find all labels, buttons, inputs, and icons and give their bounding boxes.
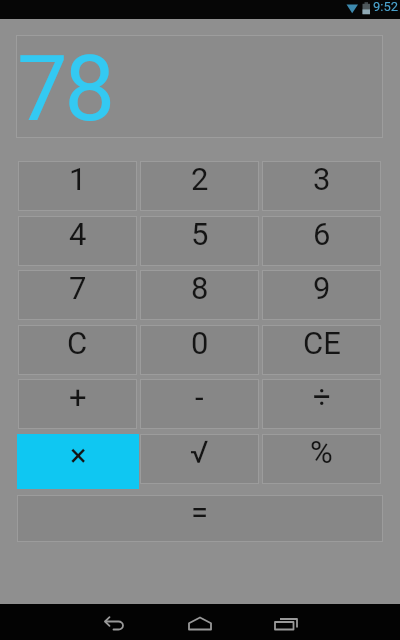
- staticText: 3: [313, 161, 331, 197]
- staticText: 8: [191, 270, 209, 306]
- staticText: 6: [313, 216, 331, 252]
- button[interactable]: [95, 604, 131, 640]
- button[interactable]: =: [17, 495, 383, 542]
- staticText: 0: [191, 325, 209, 361]
- button[interactable]: ×: [17, 434, 139, 489]
- staticText: CE: [303, 325, 341, 361]
- staticText: 7: [69, 270, 87, 306]
- button[interactable]: 3: [262, 161, 381, 211]
- button[interactable]: [182, 604, 218, 640]
- button[interactable]: C: [18, 325, 137, 375]
- staticText: ×: [70, 437, 87, 473]
- button[interactable]: +: [18, 379, 137, 429]
- button[interactable]: %: [262, 434, 381, 484]
- button[interactable]: 9: [262, 270, 381, 320]
- button[interactable]: 7: [18, 270, 137, 320]
- staticText: 5: [191, 216, 209, 252]
- staticText: 78: [17, 37, 113, 140]
- button[interactable]: 78: [16, 35, 383, 138]
- button[interactable]: 4: [18, 216, 137, 266]
- button[interactable]: CE: [262, 325, 381, 375]
- staticText: √: [190, 434, 209, 470]
- button[interactable]: 0: [140, 325, 259, 375]
- button[interactable]: 6: [262, 216, 381, 266]
- button[interactable]: -: [140, 379, 259, 429]
- staticText: 9:52: [373, 0, 399, 14]
- staticText: ÷: [313, 379, 331, 415]
- button[interactable]: √: [140, 434, 259, 484]
- button[interactable]: [267, 604, 303, 640]
- button[interactable]: ÷: [262, 379, 381, 429]
- staticText: +: [69, 379, 87, 415]
- staticText: C: [67, 325, 88, 361]
- staticText: 4: [69, 216, 87, 252]
- button[interactable]: 1: [18, 161, 137, 211]
- staticText: =: [191, 494, 209, 530]
- button[interactable]: 5: [140, 216, 259, 266]
- button[interactable]: 2: [140, 161, 259, 211]
- button[interactable]: 8: [140, 270, 259, 320]
- staticText: 2: [191, 161, 209, 197]
- staticText: -: [195, 379, 204, 415]
- staticText: %: [310, 434, 333, 470]
- staticText: 9: [313, 270, 331, 306]
- staticText: 1: [69, 161, 87, 197]
